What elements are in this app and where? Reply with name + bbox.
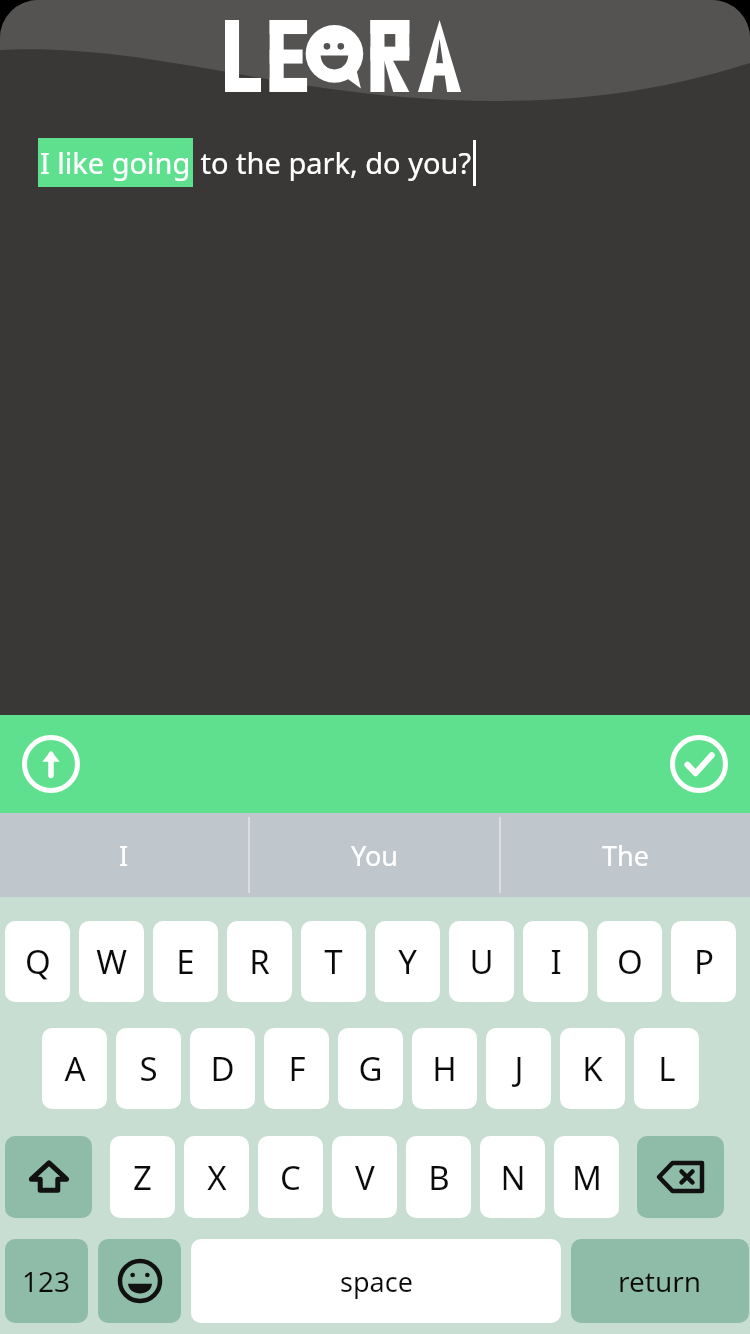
button[interactable]: P <box>671 921 736 1002</box>
staticText: K <box>582 1046 603 1091</box>
button[interactable]: Send up <box>22 735 80 793</box>
button[interactable]: Z <box>110 1136 175 1218</box>
button[interactable]: V <box>332 1136 397 1218</box>
staticText: You <box>351 837 398 874</box>
button[interactable]: F <box>264 1028 329 1109</box>
staticText: P <box>694 939 714 984</box>
staticText: Q <box>25 939 51 984</box>
button[interactable]: E <box>153 921 218 1002</box>
button[interactable]: U <box>449 921 514 1002</box>
staticText: to the park, do you? <box>193 143 472 182</box>
staticText: J <box>514 1046 524 1091</box>
button[interactable]: return <box>571 1239 749 1323</box>
staticText: I like going <box>40 143 191 182</box>
staticText: H <box>432 1046 457 1091</box>
staticText: 123 <box>22 1262 71 1300</box>
staticText: return <box>618 1262 702 1300</box>
staticText: G <box>358 1046 383 1091</box>
button[interactable]: X <box>184 1136 249 1218</box>
button[interactable]: space <box>191 1239 561 1323</box>
button[interactable]: Emoji <box>98 1239 181 1323</box>
button[interactable]: G <box>338 1028 403 1109</box>
staticText: X <box>207 1155 227 1200</box>
staticText: Y <box>398 939 417 984</box>
staticText: V <box>355 1155 375 1200</box>
button[interactable]: R <box>227 921 292 1002</box>
staticText: C <box>280 1155 301 1200</box>
button[interactable]: S <box>116 1028 181 1109</box>
button[interactable]: A <box>42 1028 107 1109</box>
button[interactable]: Y <box>375 921 440 1002</box>
staticText: R <box>249 939 270 984</box>
staticText: U <box>469 939 494 984</box>
staticText: N <box>500 1155 526 1200</box>
button[interactable]: Confirm <box>670 735 728 793</box>
button[interactable]: I <box>523 921 588 1002</box>
button[interactable]: L <box>634 1028 699 1109</box>
staticText: M <box>572 1155 602 1200</box>
button[interactable]: You <box>250 813 499 897</box>
staticText: B <box>428 1155 450 1200</box>
button[interactable]: B <box>406 1136 471 1218</box>
button[interactable]: O <box>597 921 662 1002</box>
staticText: E <box>176 939 195 984</box>
button[interactable]: W <box>79 921 144 1002</box>
button[interactable]: The <box>501 813 750 897</box>
staticText: O <box>617 939 643 984</box>
staticText: space <box>340 1263 413 1300</box>
staticText: A <box>64 1046 86 1091</box>
button[interactable]: N <box>480 1136 545 1218</box>
button[interactable]: D <box>190 1028 255 1109</box>
button[interactable]: M <box>554 1136 619 1218</box>
staticText: Z <box>133 1155 152 1200</box>
staticText: I <box>550 939 562 984</box>
staticText: The <box>602 837 649 874</box>
button[interactable]: Shift <box>5 1136 92 1218</box>
staticText: S <box>139 1046 158 1091</box>
staticText: L <box>658 1046 676 1091</box>
button[interactable]: C <box>258 1136 323 1218</box>
button[interactable]: 123 <box>5 1239 88 1323</box>
button[interactable]: J <box>486 1028 551 1109</box>
staticText: W <box>96 939 127 984</box>
staticText: I <box>119 837 129 874</box>
button[interactable]: T <box>301 921 366 1002</box>
button[interactable]: Backspace <box>637 1136 724 1218</box>
staticText: F <box>288 1046 306 1091</box>
staticText: D <box>210 1046 235 1091</box>
button[interactable]: K <box>560 1028 625 1109</box>
button[interactable]: I <box>0 813 248 897</box>
button[interactable]: Q <box>5 921 70 1002</box>
button[interactable]: H <box>412 1028 477 1109</box>
staticText: T <box>324 939 343 984</box>
